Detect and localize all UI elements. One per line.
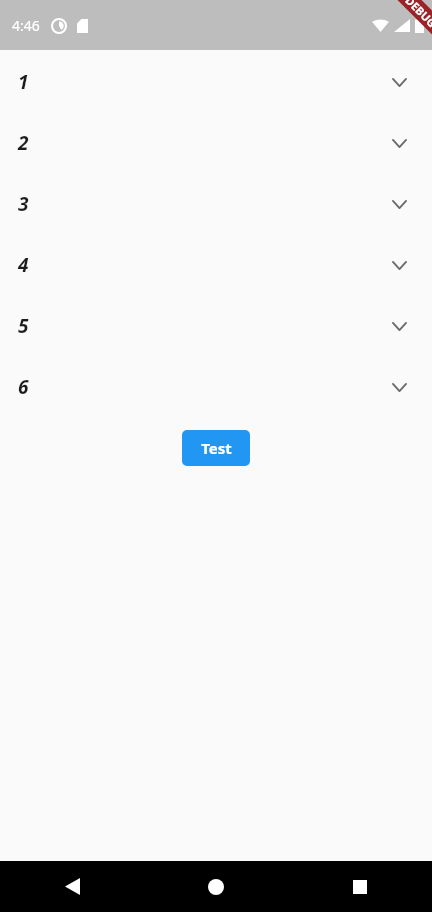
other: Expand 5: [388, 315, 410, 337]
staticText: 4:46: [12, 16, 40, 35]
button[interactable]: Home: [144, 861, 288, 912]
other: Expand 3: [388, 193, 410, 215]
other: Expand 4: [388, 254, 410, 276]
staticText: 5: [18, 313, 29, 339]
staticText: 4: [18, 252, 29, 278]
button[interactable]: Test: [182, 430, 250, 466]
staticText: 6: [18, 374, 29, 400]
staticText: 1: [18, 69, 29, 95]
button[interactable]: 4: [0, 234, 432, 295]
staticText: 3: [18, 191, 29, 217]
button[interactable]: 1: [0, 51, 432, 112]
button[interactable]: Recent apps: [288, 861, 432, 912]
button[interactable]: 6: [0, 356, 432, 417]
other: Expand 1: [388, 71, 410, 93]
other: Expand 2: [388, 132, 410, 154]
button[interactable]: 3: [0, 173, 432, 234]
staticText: 2: [18, 130, 29, 156]
button[interactable]: 2: [0, 112, 432, 173]
button[interactable]: 5: [0, 295, 432, 356]
staticText: Test: [201, 438, 232, 458]
other: Expand 6: [388, 376, 410, 398]
button[interactable]: Back: [0, 861, 144, 912]
staticText: DEBUG: [402, 0, 432, 30]
